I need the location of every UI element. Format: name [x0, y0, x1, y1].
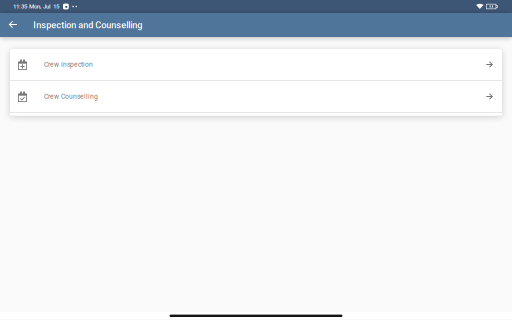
button[interactable]: Crew Inspection: [10, 49, 502, 80]
button[interactable]: Back: [0, 13, 26, 37]
staticText: Crew Inspection: [44, 61, 93, 68]
button[interactable]: Crew Counselling: [10, 81, 502, 112]
staticText: Crew Counselling: [44, 93, 98, 100]
staticText: Inspection and Counselling: [33, 20, 142, 30]
staticText: 11:35 Mon, Jul 15: [13, 3, 59, 10]
